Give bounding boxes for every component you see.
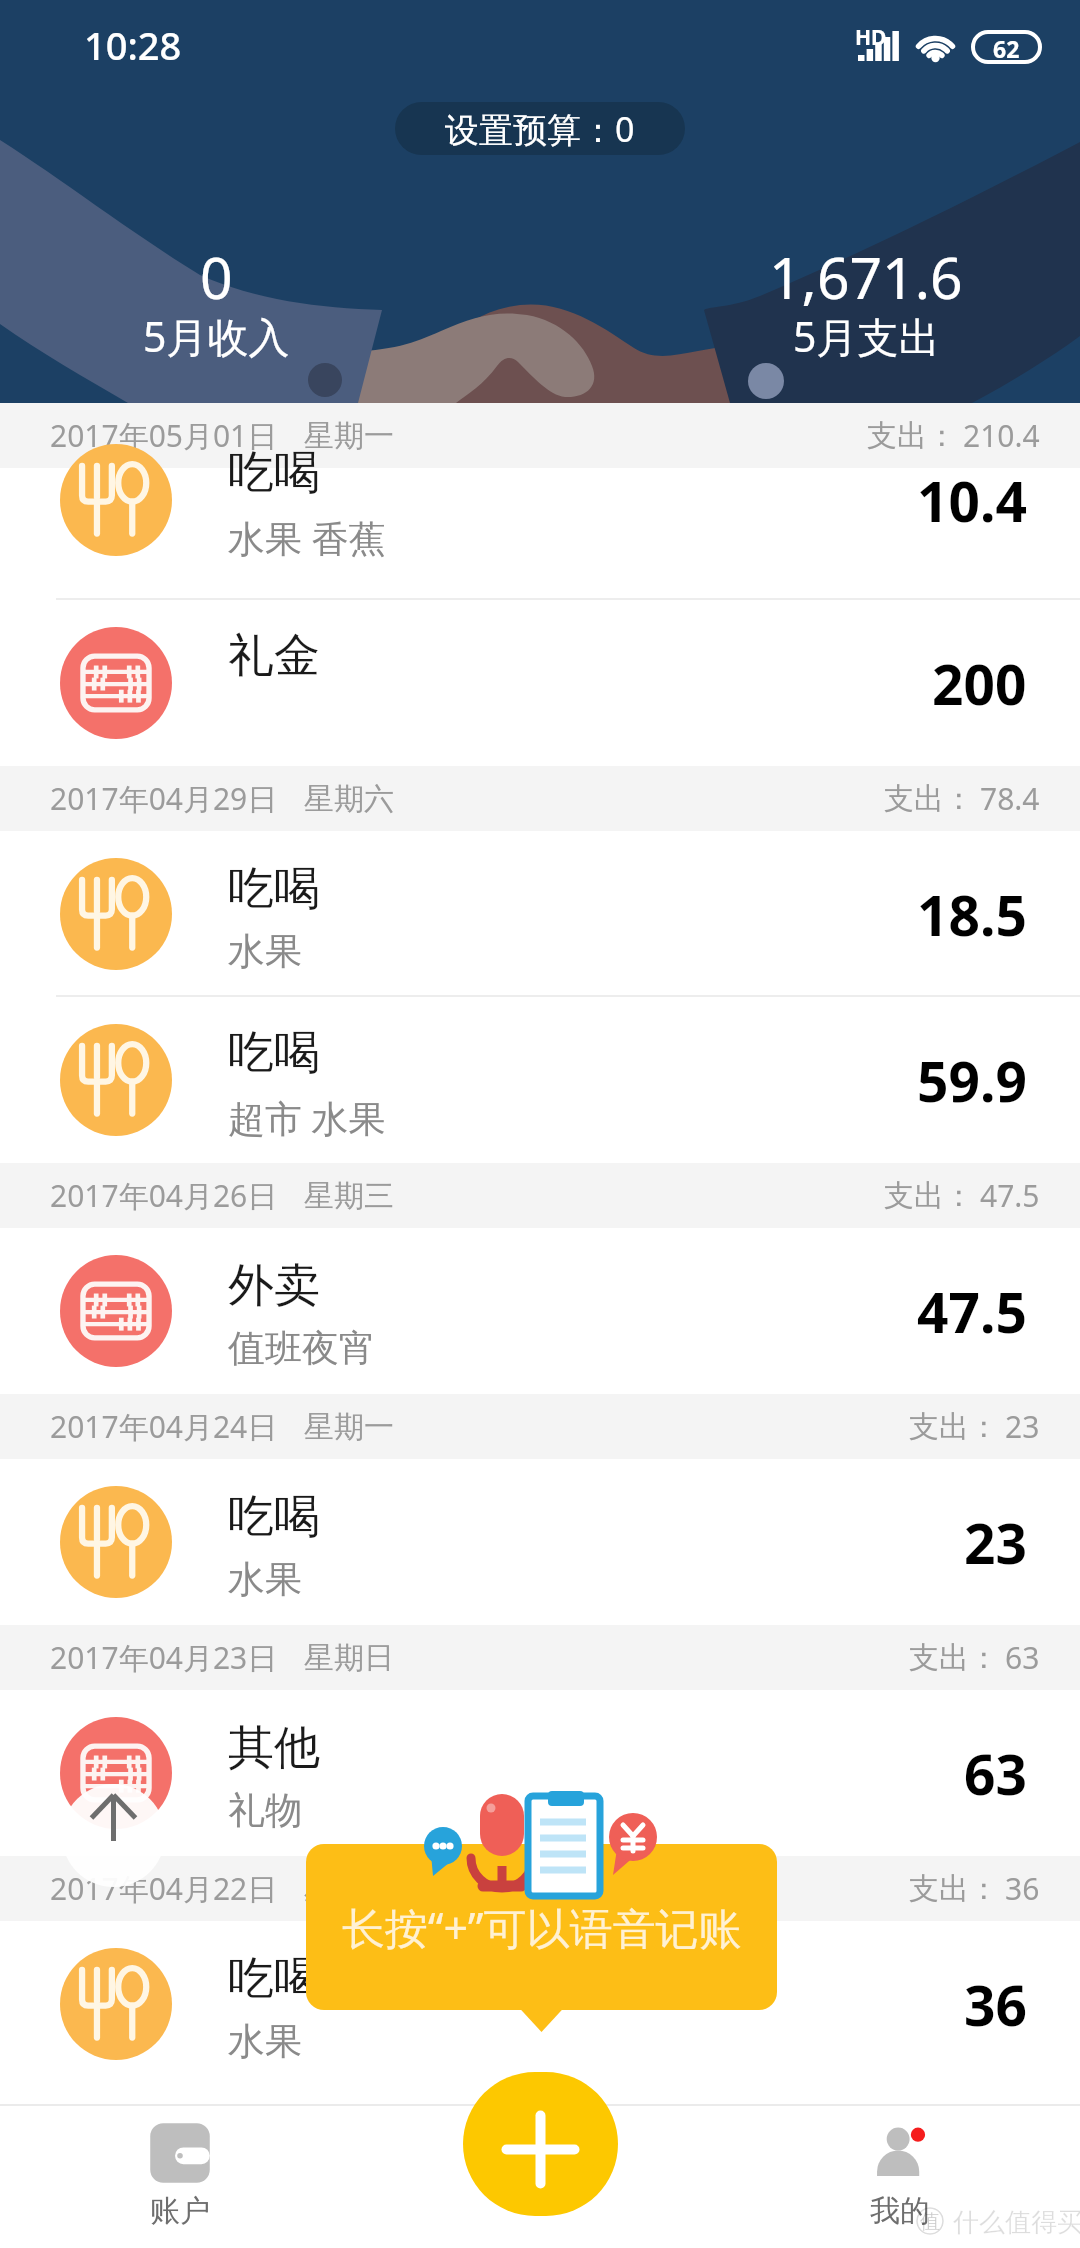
staticText: 水果	[228, 2018, 302, 2065]
staticText: 吃喝	[228, 1024, 320, 1082]
button[interactable]: 账户	[90, 2122, 270, 2248]
staticText: 设置预算：0	[445, 106, 635, 152]
staticText: 支出：	[884, 1177, 974, 1215]
staticText: 支出：	[909, 1408, 999, 1446]
staticText: 200	[932, 646, 1027, 721]
staticText: 23	[1005, 1406, 1040, 1447]
staticText: 10.4	[917, 463, 1027, 538]
button[interactable]: 吃喝	[0, 831, 1080, 997]
staticText: 63	[964, 1736, 1027, 1811]
staticText: 2017年05月01日	[50, 415, 278, 456]
staticText: 吃喝	[228, 444, 320, 502]
button[interactable]: 吃喝	[0, 468, 1080, 600]
staticText: 5月收入	[143, 308, 290, 364]
staticText: 23	[964, 1505, 1027, 1580]
staticText: 账户	[150, 2192, 210, 2230]
button[interactable]: 我的	[810, 2122, 990, 2248]
staticText: 2017年04月23日	[50, 1637, 278, 1678]
staticText: 47.5	[980, 1175, 1040, 1216]
staticText: 其他	[228, 1719, 320, 1777]
staticText: 支出：	[867, 417, 957, 455]
button[interactable]: Scroll to top	[62, 1784, 165, 1887]
staticText: 0	[200, 238, 233, 316]
staticText: HD	[855, 23, 887, 52]
staticText: 59.9	[917, 1043, 1027, 1118]
staticText: 2017年04月22日	[50, 1868, 278, 1909]
staticText: 水果	[228, 1556, 302, 1603]
staticText: 2017年04月26日	[50, 1175, 278, 1216]
staticText: 星期三	[304, 1177, 394, 1215]
button[interactable]: 礼金	[0, 600, 1080, 766]
staticText: 10:28	[84, 19, 182, 71]
staticText: 支出：	[909, 1870, 999, 1908]
staticText: 吃喝	[228, 1950, 320, 2008]
button[interactable]: 长按“+”可以语音记账	[306, 1844, 777, 2010]
staticText: 支出：	[909, 1639, 999, 1677]
staticText: 值班夜宵	[228, 1325, 376, 1372]
button[interactable]: 外卖	[0, 1228, 1080, 1394]
button[interactable]: 设置预算：0	[395, 102, 685, 155]
staticText: 吃喝	[228, 1488, 320, 1546]
staticText: 吃喝	[228, 860, 320, 918]
staticText: 值	[920, 2209, 940, 2234]
staticText: 星期一	[304, 417, 394, 455]
staticText: 礼金	[228, 627, 320, 685]
staticText: 星期日	[304, 1639, 394, 1677]
staticText: 5月支出	[793, 308, 940, 364]
staticText: 2017年04月24日	[50, 1406, 278, 1447]
button[interactable]: 吃喝	[0, 1921, 1080, 2087]
staticText: 1,671.6	[769, 238, 963, 316]
staticText: 星期六	[304, 780, 394, 818]
staticText: 36	[964, 1967, 1027, 2042]
staticText: 我的	[870, 2192, 930, 2230]
button[interactable]: 其他	[0, 1690, 1080, 1856]
button[interactable]: Add record	[463, 2072, 618, 2216]
staticText: 外卖	[228, 1257, 320, 1315]
staticText: 78.4	[980, 778, 1040, 819]
button[interactable]: 吃喝	[0, 1459, 1080, 1625]
staticText: 2017年04月29日	[50, 778, 278, 819]
staticText: 62	[993, 33, 1020, 64]
staticText: 63	[1005, 1637, 1040, 1678]
staticText: 210.4	[963, 415, 1040, 456]
button[interactable]: 吃喝	[0, 997, 1080, 1163]
staticText: 什么值得买	[953, 2206, 1080, 2239]
staticText: 水果 香蕉	[228, 512, 386, 563]
staticText: 星期六	[304, 1870, 394, 1908]
staticText: 长按“+”可以语音记账	[342, 1898, 742, 1957]
staticText: 36	[1005, 1868, 1040, 1909]
staticText: 支出：	[884, 780, 974, 818]
staticText: 礼物	[228, 1787, 302, 1834]
staticText: 47.5	[917, 1274, 1027, 1349]
staticText: 18.5	[917, 877, 1027, 952]
staticText: 超市 水果	[228, 1092, 386, 1143]
staticText: 水果	[228, 928, 302, 975]
staticText: 星期一	[304, 1408, 394, 1446]
